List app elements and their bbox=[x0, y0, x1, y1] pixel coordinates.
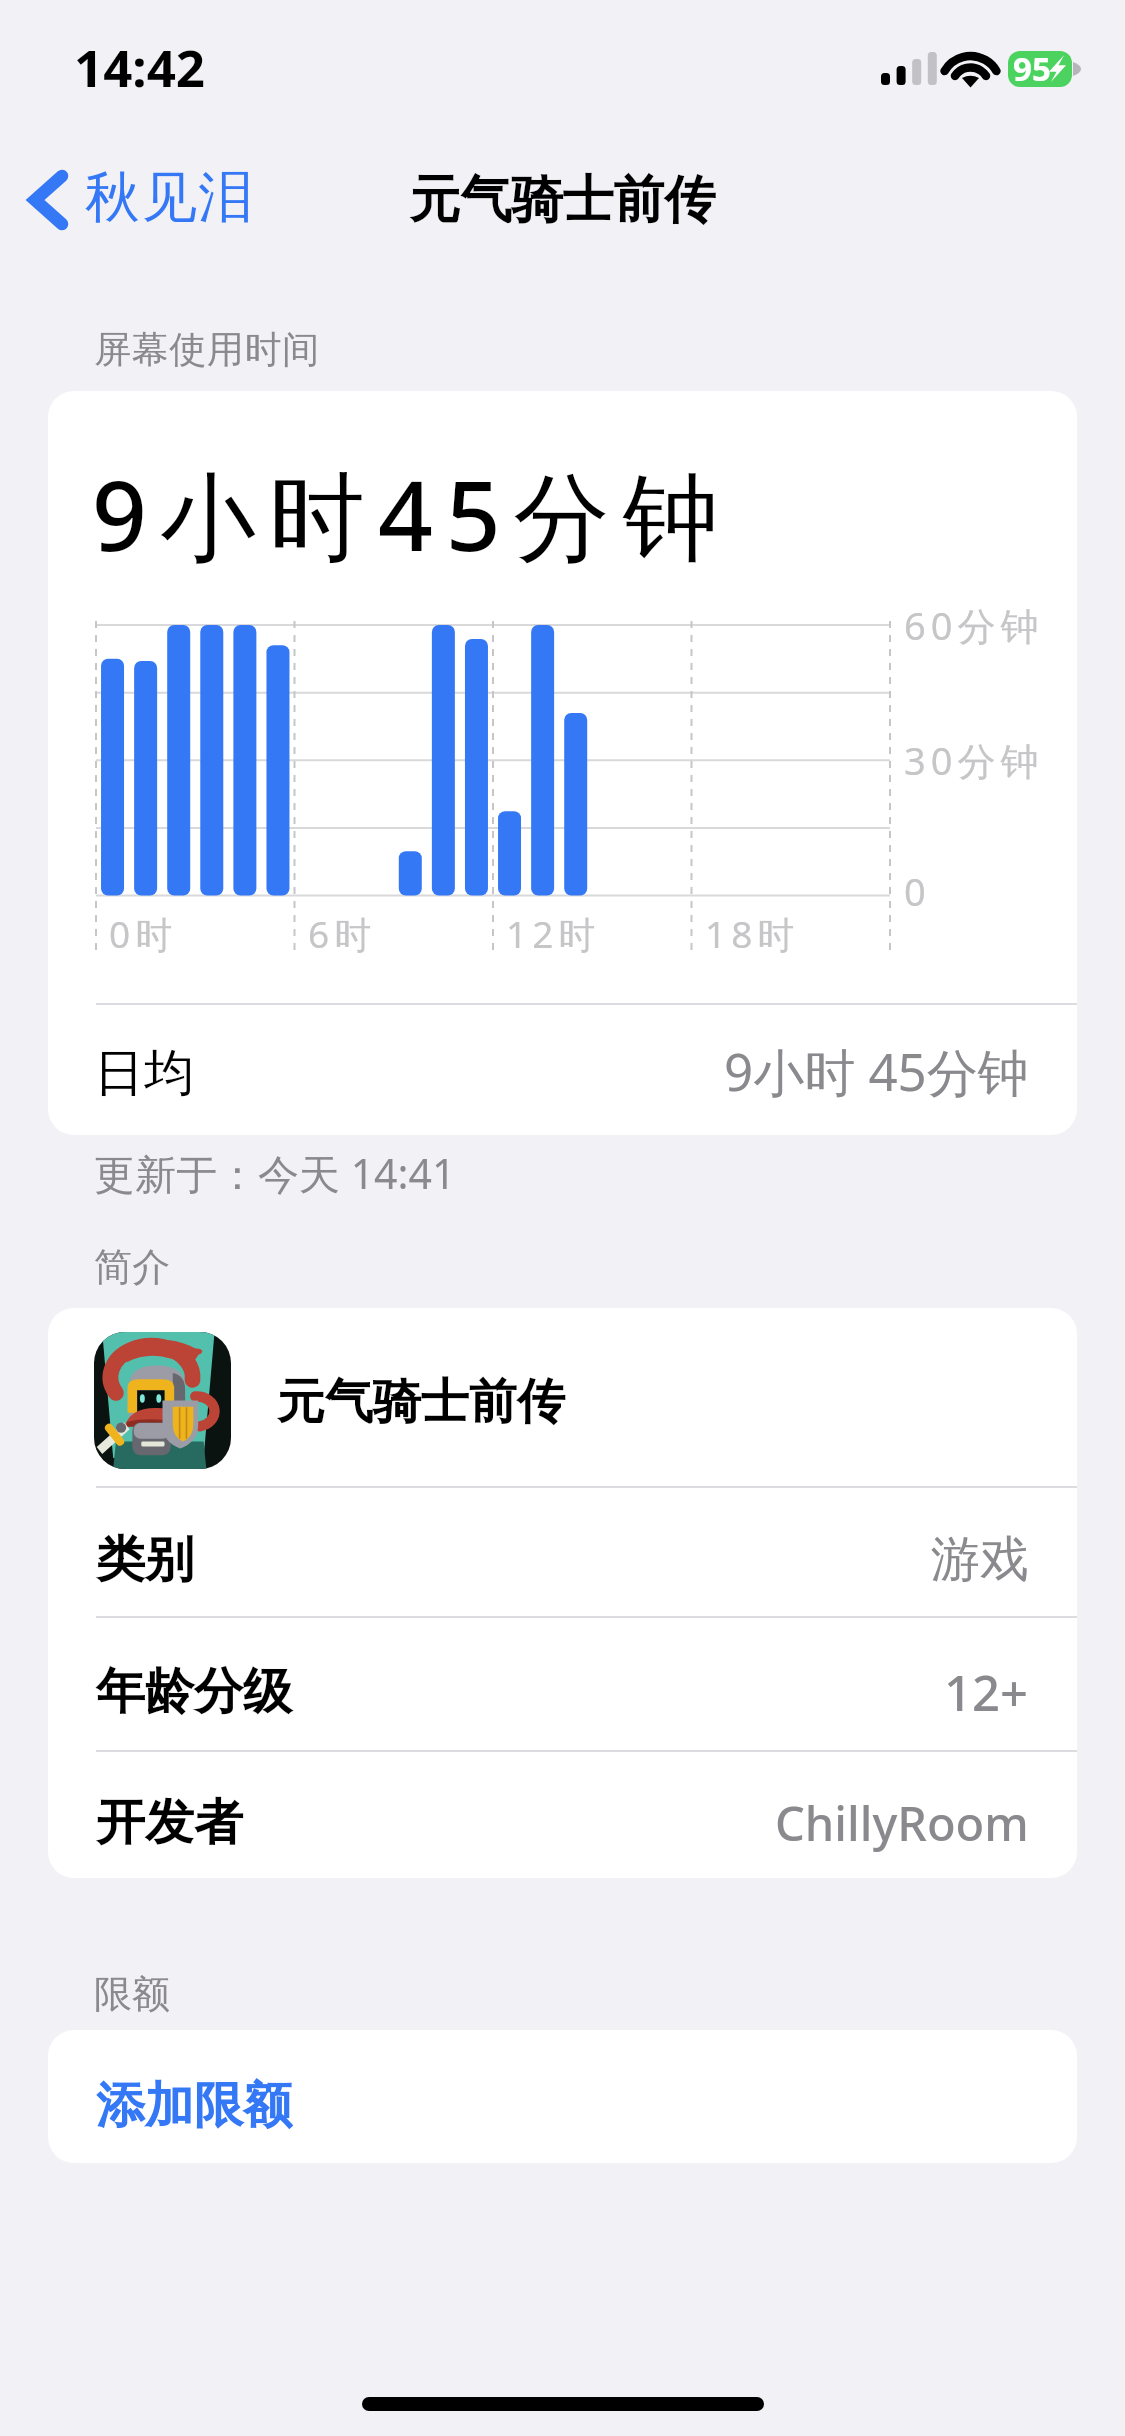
staticText: 95 bbox=[1013, 46, 1051, 91]
staticText: 屏幕使用时间 bbox=[94, 326, 320, 373]
staticText: 日均 bbox=[94, 1042, 194, 1105]
staticText: 游戏 bbox=[931, 1529, 1029, 1591]
staticText: 12+ bbox=[944, 1659, 1029, 1726]
staticText: 18时 bbox=[705, 908, 800, 959]
staticText: 秋见泪 bbox=[85, 163, 255, 232]
button[interactable]: Back bbox=[20, 155, 271, 244]
button[interactable]: 类别 bbox=[48, 1486, 1077, 1616]
staticText: 9小时 45分钟 bbox=[724, 1036, 1029, 1106]
other: Wi-Fi bbox=[947, 51, 994, 84]
staticText: 9小时45分钟 bbox=[92, 448, 732, 579]
staticText: 0时 bbox=[109, 908, 178, 959]
staticText: 年龄分级 bbox=[96, 1661, 292, 1723]
staticText: 类别 bbox=[96, 1529, 194, 1591]
staticText: 元气骑士前传 bbox=[0, 168, 1125, 232]
staticText: 限额 bbox=[94, 1970, 170, 2018]
staticText: 6时 bbox=[308, 908, 377, 959]
staticText: ChillyRoom bbox=[775, 1791, 1029, 1855]
staticText: 简介 bbox=[94, 1243, 170, 1291]
staticText: 元气骑士前传 bbox=[277, 1372, 565, 1432]
staticText: 更新于：今天 14:41 bbox=[94, 1145, 456, 1201]
staticText: 12时 bbox=[506, 908, 601, 959]
staticText: 14:42 bbox=[74, 32, 206, 101]
button[interactable]: 元气骑士前传 bbox=[48, 1308, 1077, 1486]
staticText: 开发者 bbox=[96, 1792, 243, 1854]
staticText: 60分钟 bbox=[904, 599, 1044, 651]
button[interactable]: 开发者 bbox=[48, 1750, 1077, 1878]
other: Back bbox=[30, 172, 66, 228]
staticText: 30分钟 bbox=[904, 734, 1044, 786]
button[interactable]: 添加限额 bbox=[48, 2030, 1077, 2163]
button[interactable]: 年龄分级 bbox=[48, 1616, 1077, 1750]
staticText: 添加限额 bbox=[96, 2075, 292, 2137]
staticText: 0 bbox=[904, 865, 926, 917]
